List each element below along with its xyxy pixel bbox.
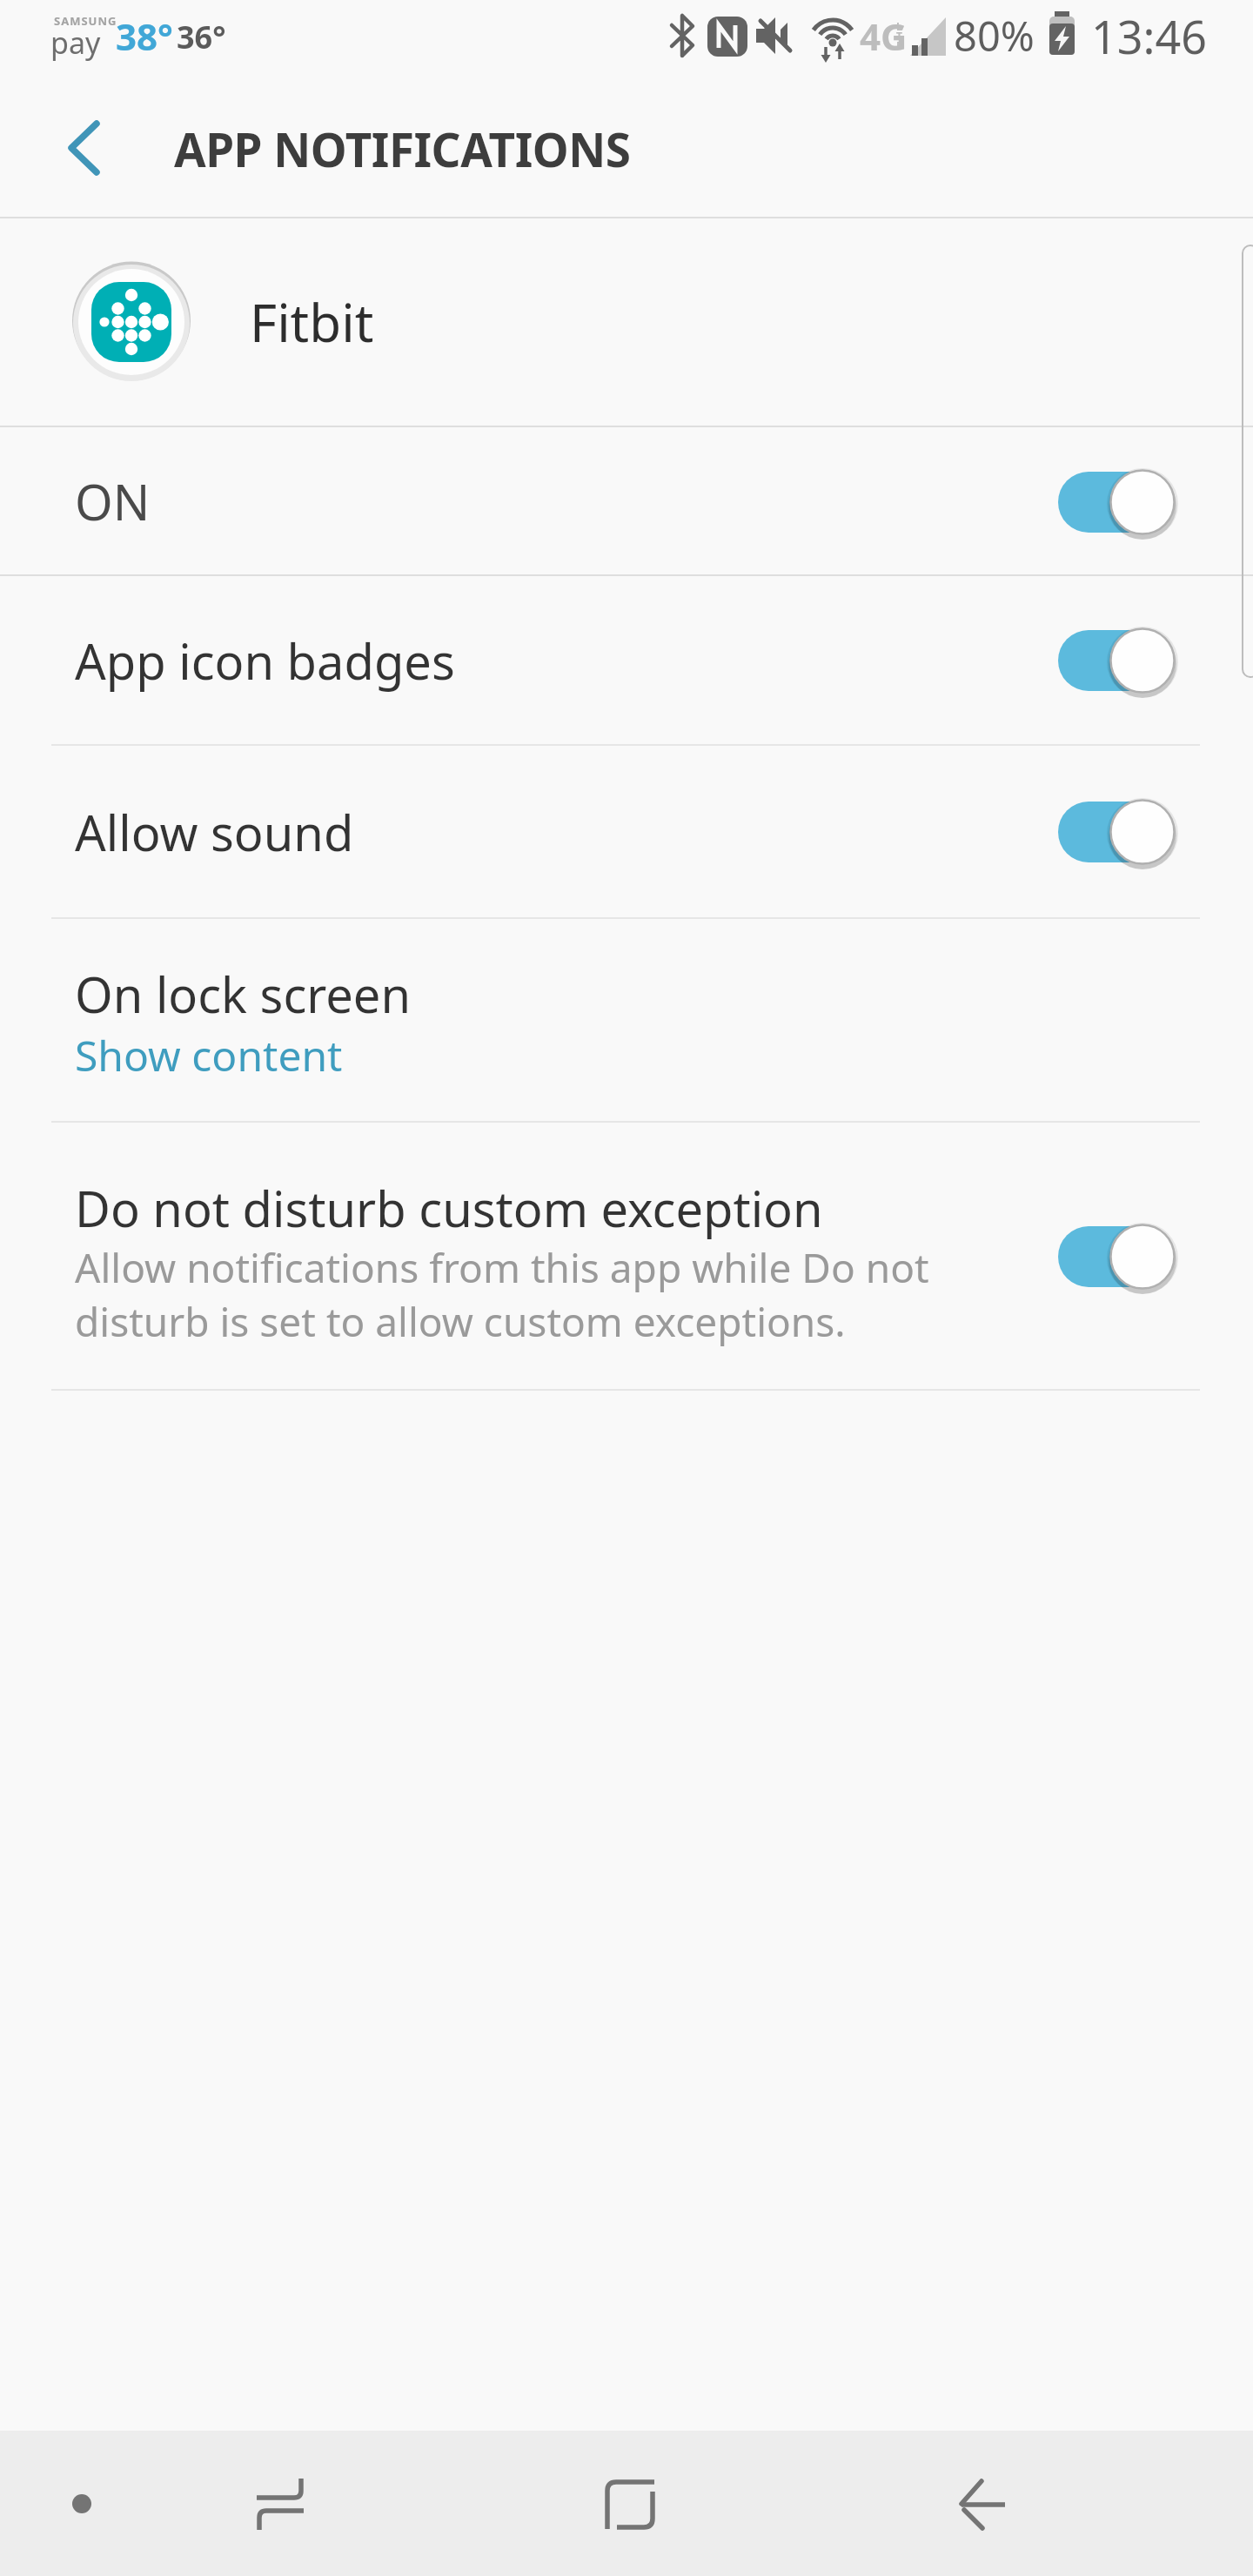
staticText: 13:46 bbox=[1091, 5, 1207, 67]
staticText: T bbox=[896, 29, 902, 43]
button[interactable] bbox=[0, 920, 1253, 1122]
button[interactable] bbox=[1058, 1222, 1180, 1291]
staticText: SAMSUNG bbox=[54, 13, 117, 29]
staticText: 4G bbox=[860, 11, 908, 61]
staticText: App icon badges bbox=[75, 627, 455, 694]
button[interactable] bbox=[63, 2485, 101, 2523]
button[interactable] bbox=[35, 104, 131, 191]
staticText: Do not disturb custom exception bbox=[75, 1175, 823, 1241]
button[interactable] bbox=[0, 428, 1253, 575]
staticText: L bbox=[896, 19, 902, 33]
staticText: ON bbox=[75, 468, 151, 534]
staticText: E bbox=[896, 38, 902, 52]
staticText: APP NOTIFICATIONS bbox=[174, 117, 631, 180]
button[interactable] bbox=[0, 746, 1253, 918]
button[interactable] bbox=[1058, 797, 1180, 867]
button[interactable] bbox=[228, 2452, 332, 2557]
button[interactable] bbox=[0, 218, 1253, 426]
button[interactable] bbox=[0, 577, 1253, 744]
staticText: Allow sound bbox=[75, 799, 354, 865]
staticText: Allow notifications from this app while … bbox=[75, 1240, 929, 1295]
button[interactable] bbox=[578, 2452, 682, 2557]
button[interactable] bbox=[1058, 467, 1180, 537]
staticText: 80% bbox=[954, 8, 1035, 64]
staticText: disturb is set to allow custom exception… bbox=[75, 1294, 846, 1349]
staticText: 36° bbox=[177, 16, 226, 58]
button[interactable] bbox=[1058, 626, 1180, 695]
staticText: Fitbit bbox=[250, 286, 374, 358]
button[interactable] bbox=[0, 1124, 1253, 1390]
staticText: Show content bbox=[75, 1027, 343, 1083]
staticText: On lock screen bbox=[75, 961, 412, 1027]
button[interactable] bbox=[929, 2452, 1034, 2557]
staticText: pay bbox=[50, 23, 101, 63]
staticText: 38° bbox=[116, 11, 173, 61]
